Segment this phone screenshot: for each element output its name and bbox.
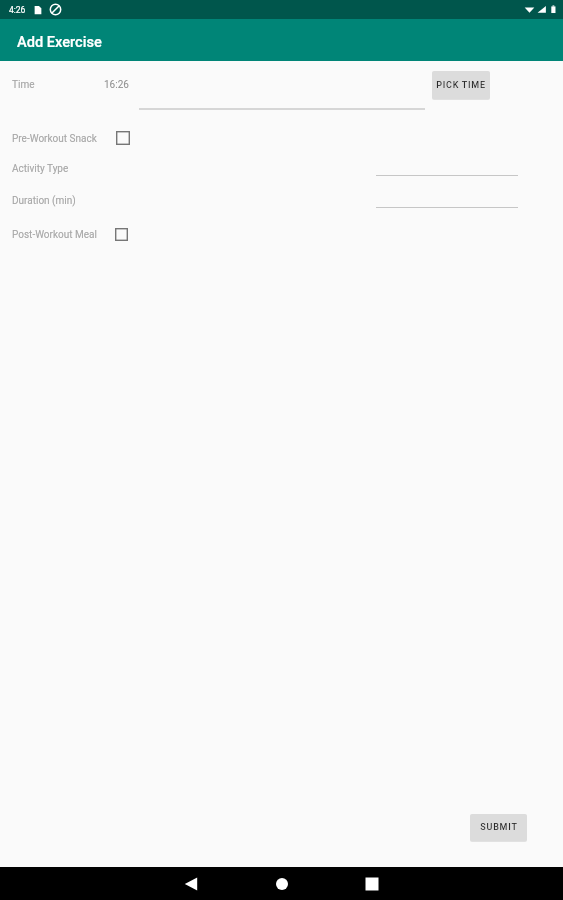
button[interactable]: Back bbox=[171, 867, 211, 900]
button[interactable]: PICK TIME bbox=[432, 71, 490, 99]
staticText: SUBMIT bbox=[480, 822, 518, 833]
staticText: Pre-Workout Snack bbox=[12, 133, 97, 145]
staticText: Time bbox=[12, 79, 35, 91]
button[interactable]: Checkbox bbox=[109, 124, 137, 152]
button[interactable]: Recents bbox=[352, 867, 392, 900]
staticText: Duration (min) bbox=[12, 195, 76, 207]
button[interactable]: Time field bbox=[139, 90, 425, 110]
button[interactable]: Activity type field bbox=[376, 157, 518, 176]
staticText: PICK TIME bbox=[436, 80, 486, 91]
staticText: Activity Type bbox=[12, 163, 69, 175]
staticText: Post-Workout Meal bbox=[12, 229, 97, 241]
button[interactable]: SUBMIT bbox=[470, 814, 527, 841]
button[interactable]: Home bbox=[262, 867, 302, 900]
staticText: 16:26 bbox=[104, 79, 129, 91]
staticText: 4:26 bbox=[9, 5, 26, 15]
button[interactable]: Checkbox bbox=[108, 221, 135, 248]
button[interactable]: Duration field bbox=[376, 189, 518, 208]
staticText: Add Exercise bbox=[17, 33, 102, 50]
